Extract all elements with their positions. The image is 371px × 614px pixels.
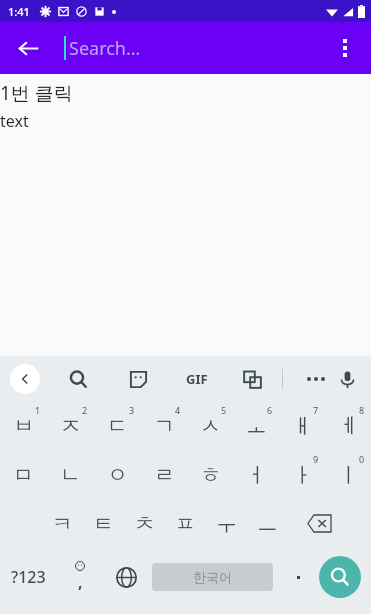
- button[interactable]: More options: [325, 28, 365, 68]
- button[interactable]: ㅋ: [42, 499, 83, 548]
- button[interactable]: [277, 548, 319, 606]
- button[interactable]: ㅂ: [0, 401, 47, 450]
- button[interactable]: ㅐ: [279, 401, 325, 450]
- button[interactable]: ㅗ: [233, 401, 279, 450]
- button[interactable]: More: [301, 364, 331, 394]
- staticText: ㅣ: [338, 462, 359, 488]
- staticText: 9: [313, 453, 319, 465]
- staticText: ㅏ: [292, 462, 313, 488]
- button[interactable]: Back: [10, 364, 40, 394]
- staticText: text: [0, 110, 29, 132]
- staticText: ㄹ: [154, 462, 175, 488]
- staticText: 4: [175, 404, 181, 416]
- button[interactable]: Stickers: [122, 363, 154, 395]
- staticText: ?123: [11, 566, 46, 588]
- staticText: ㅌ: [93, 511, 114, 537]
- button[interactable]: ㅣ: [325, 450, 371, 499]
- button[interactable]: Comma and emoji: [56, 548, 104, 606]
- staticText: 1: [35, 404, 41, 416]
- staticText: 3: [129, 404, 135, 416]
- staticText: 7: [313, 404, 319, 416]
- button[interactable]: ㄷ: [94, 401, 141, 450]
- staticText: 5: [221, 404, 227, 416]
- button[interactable]: Translate: [236, 363, 268, 395]
- staticText: GIF: [186, 370, 208, 388]
- button[interactable]: ㅎ: [187, 450, 233, 499]
- button[interactable]: Search: [319, 556, 361, 598]
- button[interactable]: ㅊ: [124, 499, 165, 548]
- staticText: ㅡ: [257, 511, 278, 537]
- button[interactable]: ㄴ: [47, 450, 94, 499]
- staticText: 8: [359, 404, 365, 416]
- staticText: Search…: [69, 36, 141, 61]
- button[interactable]: ㅅ: [187, 401, 233, 450]
- staticText: ㅇ: [107, 462, 128, 488]
- button[interactable]: Voice input: [331, 363, 363, 395]
- staticText: ㅎ: [200, 462, 221, 488]
- button[interactable]: Search…: [64, 28, 311, 68]
- staticText: ㅂ: [13, 413, 34, 439]
- staticText: 2: [82, 404, 88, 416]
- button[interactable]: ㄱ: [141, 401, 187, 450]
- staticText: ㅗ: [246, 413, 267, 439]
- staticText: ㅅ: [200, 413, 221, 439]
- button[interactable]: 한국어: [152, 563, 273, 591]
- button[interactable]: ㅔ: [325, 401, 371, 450]
- button[interactable]: ㅁ: [0, 450, 47, 499]
- staticText: ㄱ: [154, 413, 175, 439]
- staticText: ㅈ: [60, 413, 81, 439]
- staticText: ㅜ: [216, 511, 237, 537]
- staticText: ㅓ: [246, 462, 267, 488]
- staticText: 한국어: [193, 569, 232, 585]
- button[interactable]: Back: [10, 30, 46, 66]
- staticText: ㅋ: [52, 511, 73, 537]
- staticText: ㅁ: [13, 462, 34, 488]
- staticText: 1번 클릭: [0, 80, 73, 106]
- staticText: 1:41: [8, 4, 30, 19]
- button[interactable]: ㅏ: [279, 450, 325, 499]
- button[interactable]: ㅇ: [94, 450, 141, 499]
- button[interactable]: GIF: [180, 362, 214, 396]
- staticText: 6: [267, 404, 273, 416]
- staticText: ,: [78, 571, 83, 593]
- button[interactable]: Backspace: [288, 499, 350, 548]
- button[interactable]: ㄹ: [141, 450, 187, 499]
- staticText: ㅐ: [292, 413, 313, 439]
- staticText: 0: [359, 453, 365, 465]
- button[interactable]: ㅈ: [47, 401, 94, 450]
- button[interactable]: ㅌ: [83, 499, 124, 548]
- button[interactable]: ㅡ: [247, 499, 288, 548]
- button[interactable]: Change language: [104, 548, 148, 606]
- staticText: ㅍ: [175, 511, 196, 537]
- button[interactable]: ㅍ: [165, 499, 206, 548]
- staticText: ㄴ: [60, 462, 81, 488]
- button[interactable]: ㅓ: [233, 450, 279, 499]
- staticText: ㄷ: [107, 413, 128, 439]
- button[interactable]: ?123: [0, 548, 56, 606]
- button[interactable]: ㅜ: [206, 499, 247, 548]
- button[interactable]: Search: [62, 363, 94, 395]
- staticText: ㅊ: [134, 511, 155, 537]
- staticText: ㅔ: [338, 413, 359, 439]
